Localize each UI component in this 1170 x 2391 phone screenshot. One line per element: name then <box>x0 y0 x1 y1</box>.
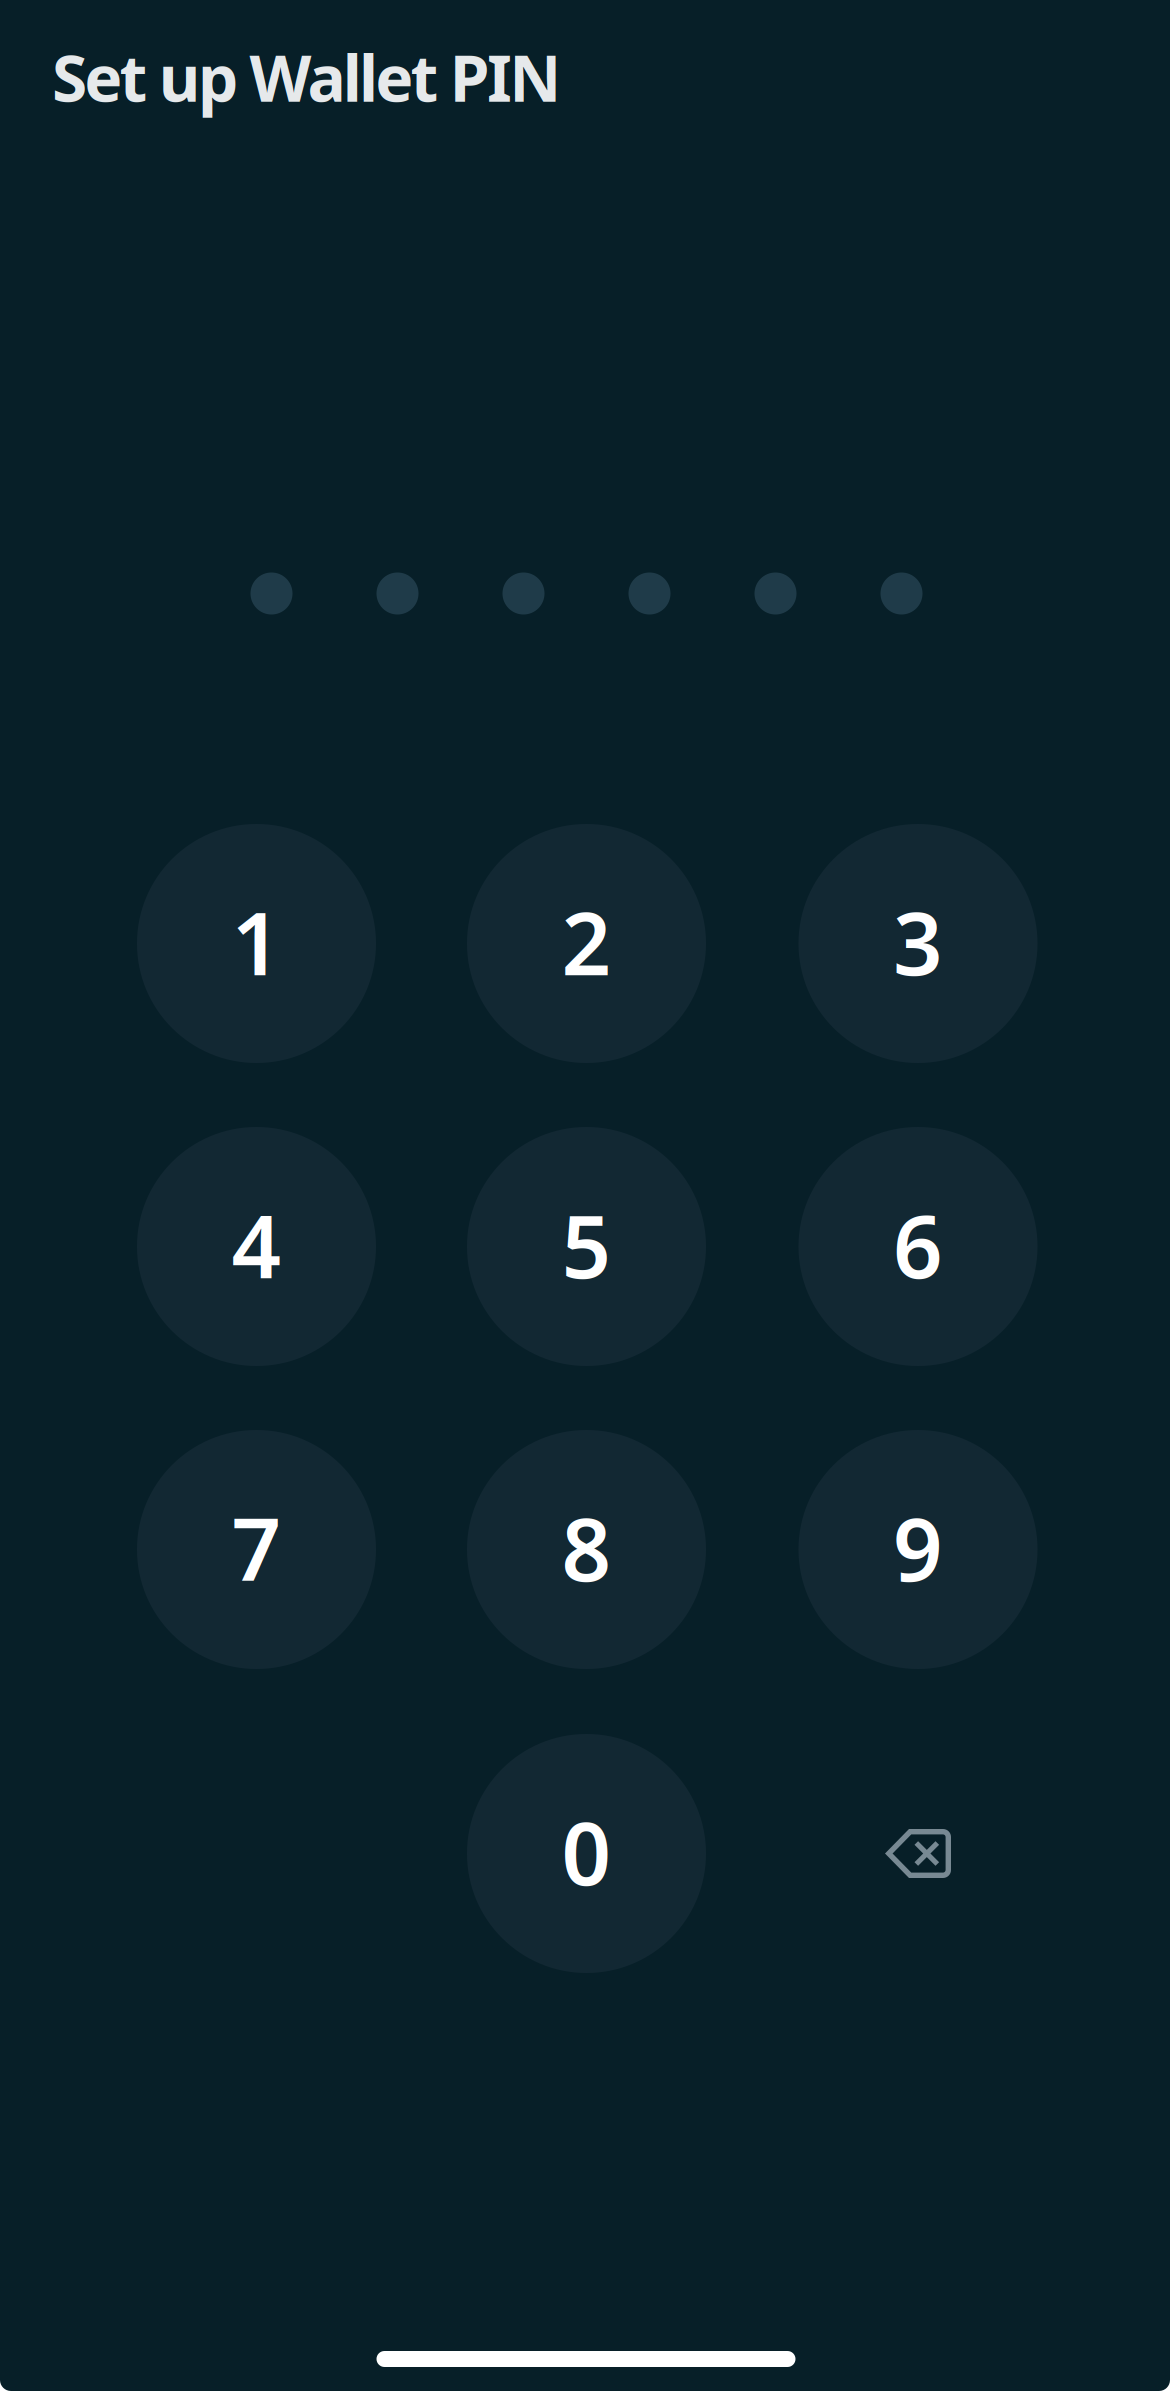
button[interactable]: 0 <box>467 1734 706 1973</box>
staticText: 3 <box>893 884 943 999</box>
staticText: 9 <box>893 1490 943 1605</box>
staticText: 1 <box>231 884 281 999</box>
button[interactable]: 8 <box>467 1430 706 1669</box>
button[interactable]: 3 <box>798 824 1037 1063</box>
staticText: 6 <box>893 1187 943 1302</box>
staticText: 8 <box>561 1490 611 1605</box>
staticText: 5 <box>561 1187 611 1302</box>
staticText: 4 <box>231 1187 281 1302</box>
button[interactable]: 9 <box>798 1430 1037 1669</box>
staticText: 0 <box>561 1794 611 1909</box>
button[interactable]: 4 <box>137 1127 376 1366</box>
button[interactable]: 6 <box>798 1127 1037 1366</box>
button[interactable]: 1 <box>137 824 376 1063</box>
staticText: 2 <box>561 884 611 999</box>
button[interactable]: Delete <box>798 1734 1037 1973</box>
button[interactable]: 7 <box>137 1430 376 1669</box>
staticText: 7 <box>231 1490 281 1605</box>
staticText: Set up Wallet PIN <box>52 34 561 119</box>
button[interactable]: 2 <box>467 824 706 1063</box>
button[interactable]: 5 <box>467 1127 706 1366</box>
